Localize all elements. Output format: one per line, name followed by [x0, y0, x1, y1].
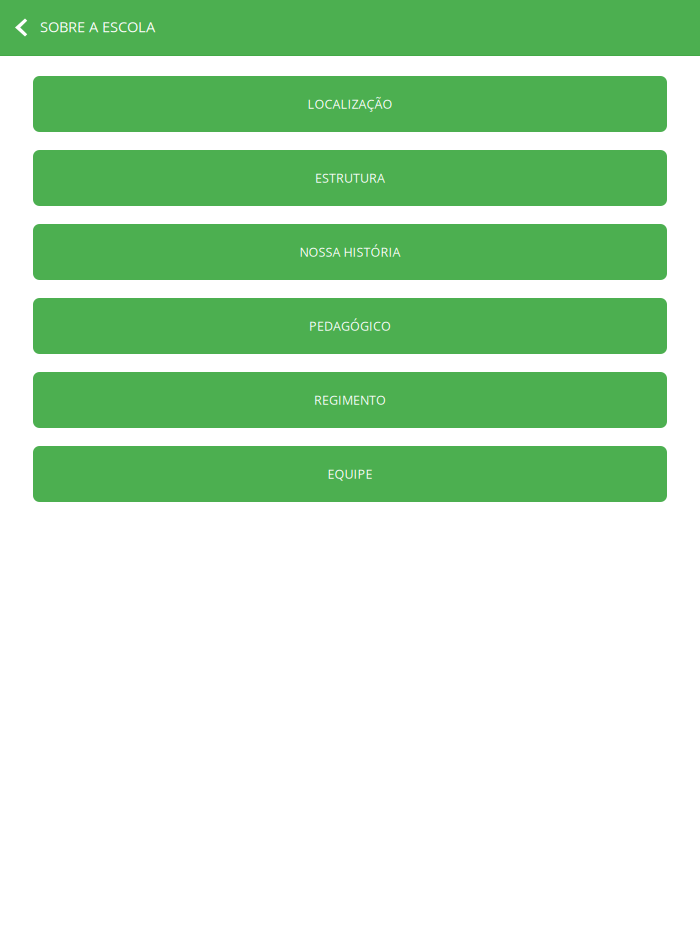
button[interactable]: LOCALIZAÇÃO [33, 76, 667, 132]
staticText: ESTRUTURA [315, 169, 385, 187]
staticText: NOSSA HISTÓRIA [299, 243, 400, 261]
button[interactable]: ESTRUTURA [33, 150, 667, 206]
staticText: EQUIPE [327, 465, 372, 483]
button[interactable]: REGIMENTO [33, 372, 667, 428]
button[interactable]: PEDAGÓGICO [33, 298, 667, 354]
staticText: SOBRE A ESCOLA [40, 16, 155, 36]
button[interactable]: EQUIPE [33, 446, 667, 502]
staticText: LOCALIZAÇÃO [307, 95, 392, 113]
button[interactable]: NOSSA HISTÓRIA [33, 224, 667, 280]
staticText: REGIMENTO [314, 391, 386, 409]
button[interactable]: Back [0, 0, 40, 55]
staticText: PEDAGÓGICO [309, 317, 391, 335]
